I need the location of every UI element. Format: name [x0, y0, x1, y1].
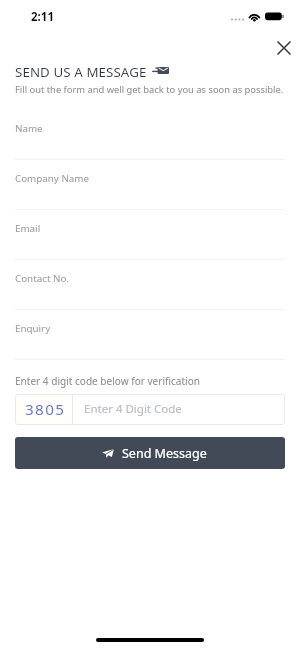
button[interactable]: Send Message: [15, 437, 285, 469]
button[interactable]: Enquiry: [15, 322, 285, 360]
staticText: SEND US A MESSAGE: [15, 63, 147, 81]
staticText: Name: [15, 122, 43, 135]
button[interactable]: Company Name: [15, 172, 285, 210]
staticText: Enter 4 Digit Code: [84, 401, 182, 417]
button[interactable]: Email: [15, 222, 285, 260]
staticText: Enquiry: [15, 322, 51, 335]
button[interactable]: Enter 4 Digit Code: [73, 394, 285, 425]
staticText: Enter 4 digit code below for verificatio…: [15, 374, 200, 388]
button[interactable]: Close: [270, 34, 298, 62]
button[interactable]: Contact No.: [15, 272, 285, 310]
staticText: 2:11: [31, 9, 54, 25]
staticText: Email: [15, 222, 41, 235]
button[interactable]: Name: [15, 122, 285, 160]
staticText: Send Message: [122, 445, 207, 462]
staticText: Company Name: [15, 172, 90, 185]
staticText: Contact No.: [15, 272, 69, 285]
staticText: Fill out the form and well get back to y…: [15, 83, 284, 96]
staticText: 3805: [25, 399, 66, 420]
